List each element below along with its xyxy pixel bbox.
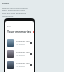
button[interactable]: Summer trip — [7, 50, 32, 58]
button[interactable]: Summer trip — [7, 39, 32, 47]
staticText: Summer trip — [16, 62, 30, 65]
staticText: Summer trip — [16, 40, 30, 43]
staticText: 12 photos — [16, 54, 25, 57]
staticText: Summer trip — [16, 51, 30, 54]
staticText: Relive your best times with memories and… — [2, 6, 33, 18]
staticText: 12 photos — [16, 43, 25, 46]
staticText: Gallery — [2, 2, 10, 5]
staticText: 12 photos — [16, 65, 25, 68]
staticText: 9:41 — [7, 25, 11, 28]
staticText: Your memories — [7, 30, 32, 34]
button[interactable]: Summer trip — [7, 61, 32, 69]
